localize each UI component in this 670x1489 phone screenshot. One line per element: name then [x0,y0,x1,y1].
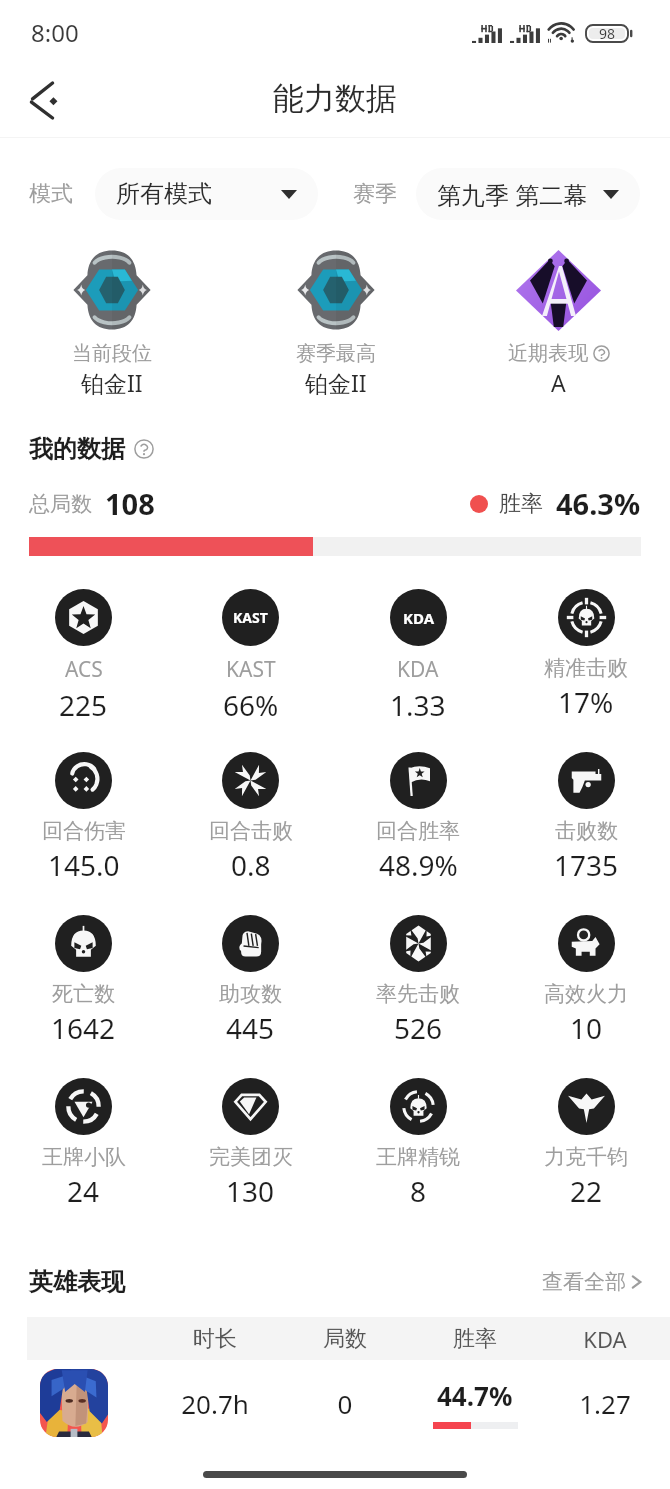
staticText: 近期表现 [508,341,588,366]
staticText: 46.3% [556,484,641,523]
staticText: 17% [558,683,614,721]
button[interactable]: KDA [334,589,502,724]
button[interactable]: 王牌小队 [0,1078,167,1210]
staticText: 1.27 [540,1386,670,1421]
staticText: 24 [67,1172,100,1210]
button[interactable]: 助攻数 [167,915,334,1047]
staticText: 英雄表现 [29,1267,125,1297]
staticText: 48.9% [379,846,458,884]
staticText: 445 [226,1009,275,1047]
staticText: 完美团灭 [209,1144,293,1170]
button[interactable]: 赛季最高 [224,231,447,398]
staticText: 击败数 [555,818,618,844]
button[interactable]: 第九季 第二幕 [416,168,640,220]
staticText: 王牌精锐 [376,1144,460,1170]
staticText: 98 [599,24,616,41]
staticText: 精准击败 [544,655,628,681]
staticText: 助攻数 [219,981,282,1007]
staticText: 胜率 [410,1325,540,1353]
staticText: 赛季最高 [296,341,376,366]
staticText: 526 [394,1009,443,1047]
button[interactable]: 死亡数 [0,915,167,1047]
staticText: 铂金II [81,367,143,398]
staticText: 130 [226,1172,275,1210]
staticText: A [551,367,566,398]
button[interactable]: 20.7h [27,1360,670,1446]
staticText: 145.0 [48,846,120,884]
button[interactable]: ACS [0,589,167,724]
button[interactable]: 回合伤害 [0,752,167,884]
staticText: 0 [280,1386,410,1421]
staticText: 1642 [51,1009,116,1047]
button[interactable]: About my data [134,439,154,459]
staticText: 模式 [29,180,73,208]
button[interactable]: 王牌精锐 [334,1078,502,1210]
button[interactable]: 近期表现 [447,231,670,398]
staticText: 225 [59,686,108,724]
staticText: 1735 [554,846,619,884]
staticText: 查看全部 [542,1269,626,1295]
button[interactable]: 所有模式 [95,168,318,220]
staticText: 20.7h [150,1386,280,1421]
staticText: 局数 [280,1325,410,1353]
staticText: KDA [403,608,435,628]
staticText: 10 [570,1009,603,1047]
staticText: KDA [397,655,439,684]
staticText: 回合伤害 [42,818,126,844]
button[interactable]: KAST [167,589,334,724]
button[interactable]: 精准击败 [502,589,670,721]
staticText: KDA [540,1324,670,1354]
staticText: 胜率 [499,490,543,518]
staticText: 能力数据 [273,79,397,118]
button[interactable]: 当前段位 [0,231,224,398]
button[interactable]: 回合胜率 [334,752,502,884]
staticText: 死亡数 [52,981,115,1007]
staticText: 回合胜率 [376,818,460,844]
staticText: 王牌小队 [42,1144,126,1170]
staticText: 率先击败 [376,981,460,1007]
staticText: 时长 [150,1325,280,1353]
staticText: 高效火力 [544,981,628,1007]
staticText: 108 [105,484,155,523]
staticText: 所有模式 [116,179,212,209]
button[interactable]: 回合击败 [167,752,334,884]
button[interactable]: 查看全部 [542,1269,643,1295]
staticText: 66% [223,686,279,724]
staticText: 1.33 [390,686,446,724]
button[interactable]: 击败数 [502,752,670,884]
staticText: 赛季 [353,180,397,208]
staticText: 8 [410,1172,427,1210]
button[interactable]: 高效火力 [502,915,670,1047]
staticText: 铂金II [305,367,367,398]
staticText: 力克千钧 [544,1144,628,1170]
staticText: 22 [570,1172,603,1210]
staticText: 44.7% [437,1378,513,1413]
staticText: KAST [226,655,276,684]
button[interactable]: 完美团灭 [167,1078,334,1210]
button[interactable]: 率先击败 [334,915,502,1047]
staticText: 我的数据 [29,434,125,464]
staticText: 第九季 第二幕 [437,178,588,211]
staticText: 回合击败 [209,818,293,844]
staticText: 0.8 [231,846,271,884]
staticText: ACS [65,655,103,684]
button[interactable]: Back [10,68,74,132]
staticText: 8:00 [31,16,79,49]
button[interactable]: 力克千钧 [502,1078,670,1210]
staticText: KAST [233,608,268,627]
staticText: 当前段位 [72,341,152,366]
staticText: 总局数 [29,491,92,517]
